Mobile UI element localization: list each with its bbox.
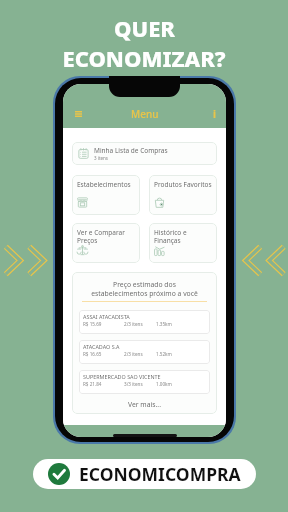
staticText: 2/3 itens [124, 321, 156, 327]
staticText: R$ 16.65 [83, 351, 124, 357]
staticText: Menu [131, 107, 159, 121]
staticText: Preço estimado dos estabelecimentos próx… [79, 280, 210, 298]
button[interactable]: Produtos Favoritos [149, 175, 217, 215]
staticText: i [213, 107, 216, 121]
staticText: 1.52km [156, 351, 172, 357]
staticText: SUPERMERCADO SAO VICENTE [83, 373, 161, 380]
staticText: ASSAI ATACADISTA [83, 313, 130, 320]
staticText: Histórico e Finanças [154, 228, 187, 245]
staticText: 1.00km [156, 381, 172, 387]
button[interactable]: Ver e Comparar Preços [72, 223, 140, 263]
staticText: 3 itens [94, 155, 109, 161]
staticText: Minha Lista de Compras [94, 146, 168, 155]
staticText: ECONOMICOMPRA [79, 462, 241, 486]
button[interactable]: Minha Lista de Compras [72, 142, 217, 165]
staticText: 3/3 itens [124, 381, 156, 387]
button[interactable]: Estabelecimentos [72, 175, 140, 215]
staticText: ECONOMIZAR? [62, 43, 226, 73]
staticText: 1.35km [156, 321, 172, 327]
button[interactable]: ATACADAO S.A [79, 340, 210, 364]
staticText: R$ 21.84 [83, 381, 124, 387]
staticText: Produtos Favoritos [154, 180, 212, 189]
staticText: Estabelecimentos [77, 180, 131, 189]
button[interactable]: Open menu [71, 107, 85, 121]
staticText: Ver mais... [128, 400, 161, 409]
staticText: QUER [114, 13, 175, 43]
button[interactable]: Histórico e Finanças [149, 223, 217, 263]
button[interactable]: Ver mais... [79, 394, 210, 414]
staticText: 2/3 itens [124, 351, 156, 357]
button[interactable]: ECONOMICOMPRA [33, 459, 256, 489]
staticText: R$ 15.69 [83, 321, 124, 327]
button[interactable]: ASSAI ATACADISTA [79, 310, 210, 334]
button[interactable]: Information [207, 107, 221, 121]
staticText: ATACADAO S.A [83, 343, 120, 350]
button[interactable]: SUPERMERCADO SAO VICENTE [79, 370, 210, 394]
staticText: Ver e Comparar Preços [77, 228, 125, 245]
